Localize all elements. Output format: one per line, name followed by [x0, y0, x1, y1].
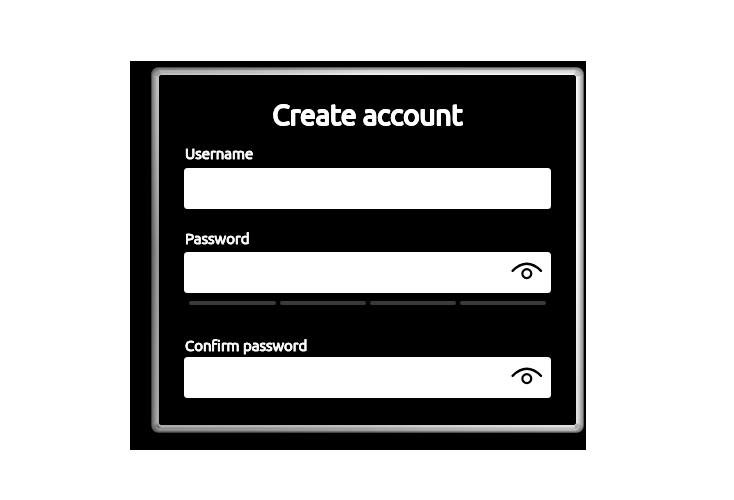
staticText: Password: [185, 230, 250, 247]
button[interactable]: Show Password: [503, 252, 551, 293]
button[interactable]: Show Confirm password: [184, 357, 551, 398]
staticText: Confirm password: [185, 337, 308, 354]
staticText: Password: [185, 230, 250, 247]
staticText: Username: [185, 145, 254, 162]
staticText: Confirm password: [185, 337, 308, 354]
staticText: Create account: [159, 99, 576, 130]
staticText: Username: [185, 145, 254, 162]
staticText: Create account: [159, 99, 576, 130]
button[interactable]: [184, 168, 551, 209]
button[interactable]: Show Password: [184, 252, 551, 293]
button[interactable]: Show Confirm password: [503, 357, 551, 398]
